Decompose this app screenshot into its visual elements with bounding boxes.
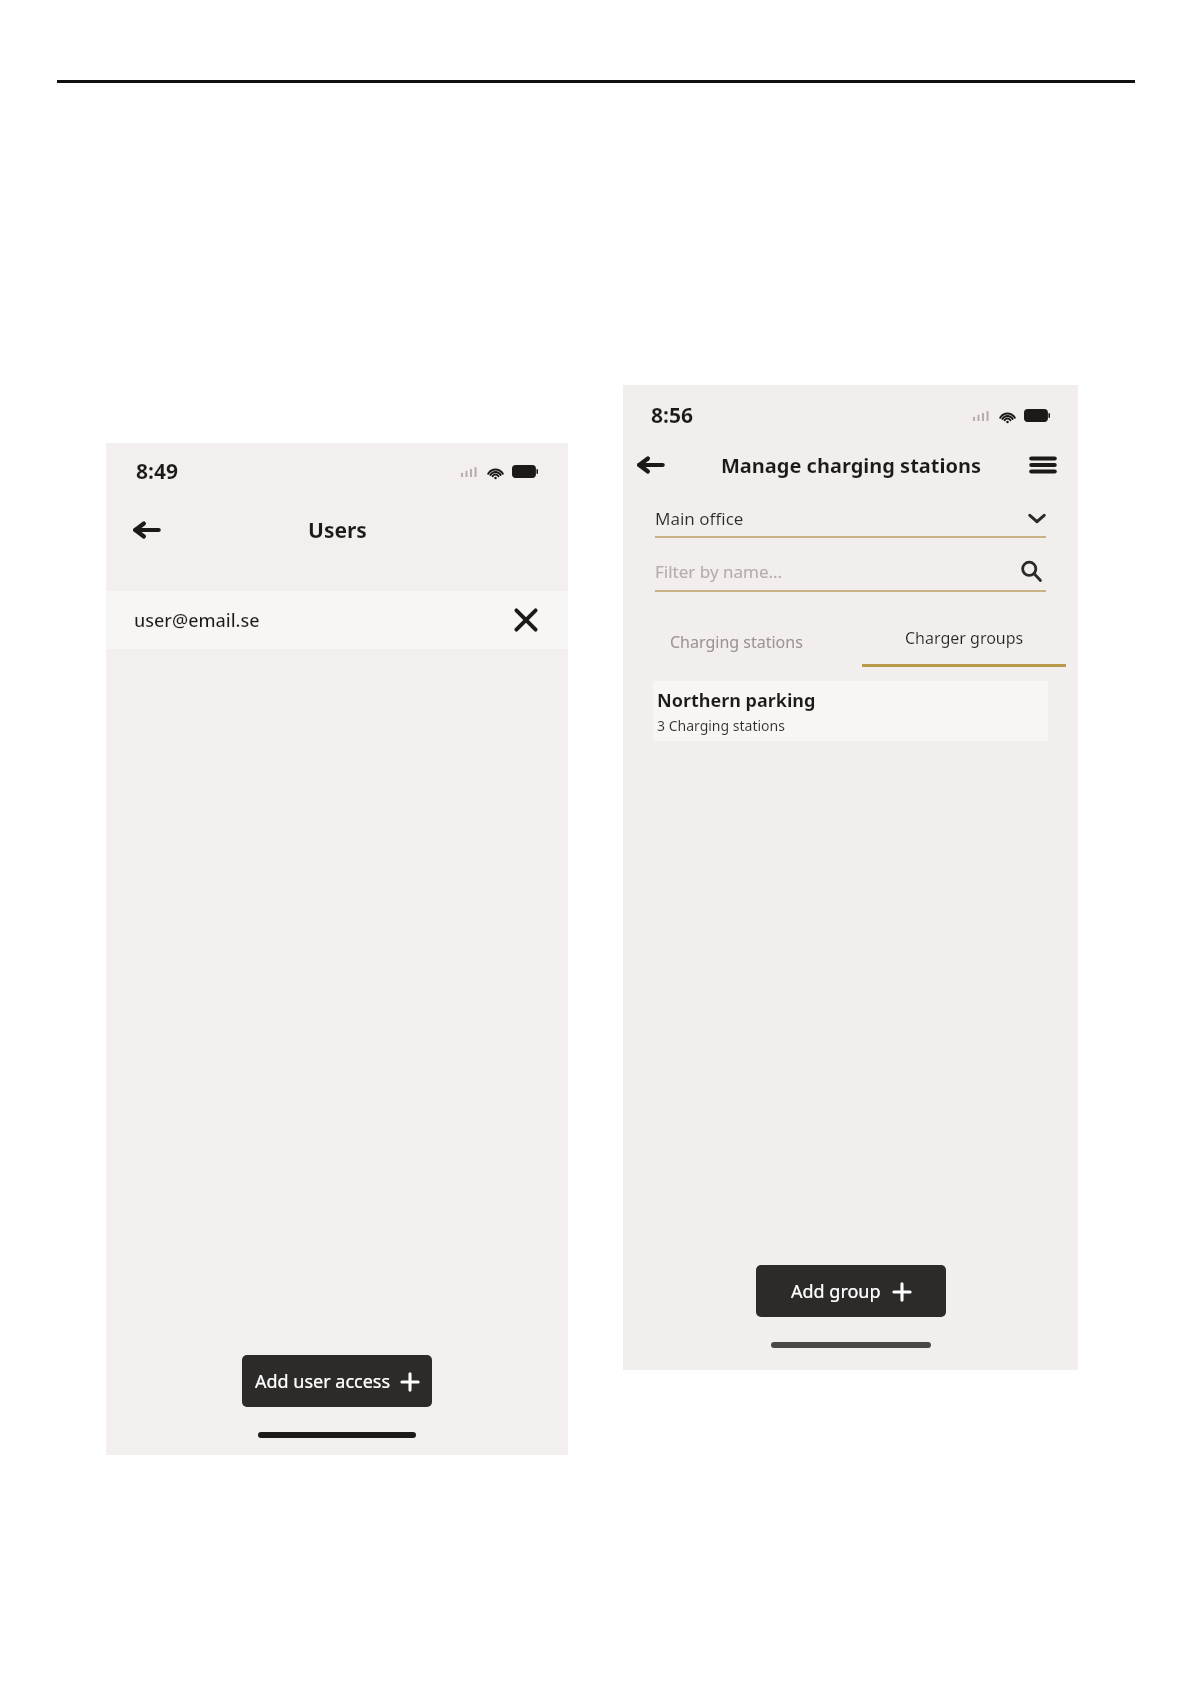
staticText: 8:56	[651, 401, 693, 430]
button[interactable]: Back	[124, 507, 170, 553]
staticText: Add group	[791, 1279, 881, 1304]
staticText: Users	[308, 516, 367, 545]
staticText: Main office	[655, 507, 744, 530]
staticText: Add user access	[255, 1369, 391, 1394]
staticText: Manage charging stations	[721, 452, 981, 479]
button[interactable]: Filter by name...	[655, 552, 1046, 592]
staticText: 3 Charging stations	[657, 716, 785, 735]
staticText: Filter by name...	[655, 560, 783, 583]
button[interactable]: Charging stations	[623, 617, 850, 667]
button[interactable]: Main office	[655, 500, 1046, 538]
staticText: 8:49	[136, 457, 178, 486]
button[interactable]: Northern parking	[653, 681, 1048, 741]
staticText: user@email.se	[134, 608, 260, 633]
other: Search	[1016, 556, 1046, 586]
button[interactable]: Add user access	[242, 1355, 432, 1407]
button[interactable]: Menu	[1020, 442, 1066, 488]
button[interactable]: Add group	[756, 1265, 946, 1317]
button[interactable]: Remove user	[506, 600, 546, 640]
staticText: Northern parking	[657, 688, 816, 713]
staticText: Charger groups	[905, 627, 1024, 649]
button[interactable]: user@email.se	[106, 591, 568, 649]
staticText: Charging stations	[670, 631, 803, 653]
button[interactable]: Charger groups	[850, 617, 1078, 667]
button[interactable]: Back	[628, 442, 674, 488]
